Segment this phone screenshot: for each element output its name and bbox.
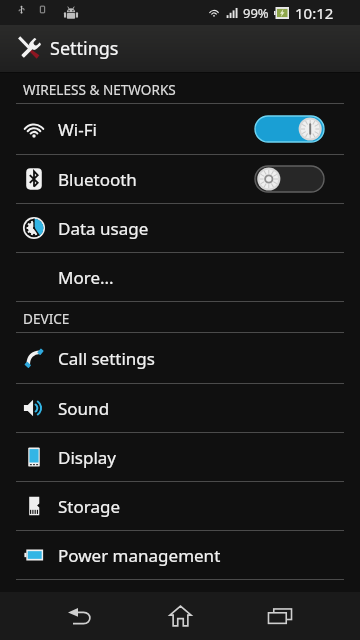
staticText: Call settings <box>58 347 155 370</box>
staticText: DEVICE <box>23 309 70 328</box>
button[interactable]: Call settings <box>0 333 360 384</box>
staticText: Bluetooth <box>58 168 137 191</box>
staticText: Sound <box>58 397 110 420</box>
button[interactable]: Home <box>154 592 206 640</box>
staticText: More... <box>58 266 114 289</box>
button[interactable]: Settings <box>0 25 360 72</box>
button[interactable]: Sound <box>0 384 360 433</box>
button[interactable]: Power management <box>0 531 360 580</box>
button[interactable]: Recent apps <box>254 592 306 640</box>
button[interactable]: Display <box>0 433 360 482</box>
staticText: Wi-Fi <box>58 118 97 141</box>
staticText: Power management <box>58 544 221 567</box>
button[interactable]: Bluetooth <box>0 155 360 204</box>
staticText: 10:12 <box>295 3 334 23</box>
staticText: Settings <box>50 36 119 61</box>
staticText: Storage <box>58 495 121 518</box>
button[interactable]: Back <box>54 592 106 640</box>
button[interactable]: Wi-Fi <box>0 104 360 155</box>
button[interactable]: Storage <box>0 482 360 531</box>
staticText: Data usage <box>58 217 149 240</box>
staticText: Display <box>58 446 116 469</box>
button[interactable]: Data usage <box>0 204 360 253</box>
staticText: 99% <box>243 4 269 22</box>
staticText: WIRELESS & NETWORKS <box>23 80 176 99</box>
button[interactable]: More... <box>0 253 360 302</box>
